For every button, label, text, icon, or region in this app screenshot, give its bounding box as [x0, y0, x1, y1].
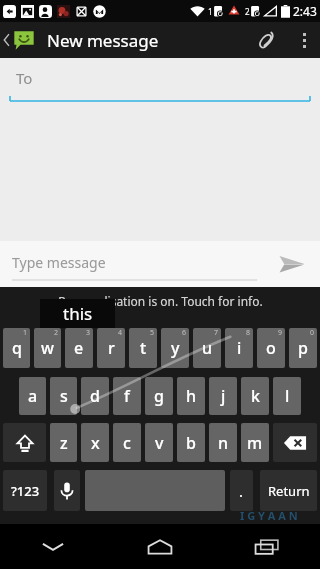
button[interactable]: z	[50, 423, 77, 462]
staticText: To	[16, 68, 33, 88]
staticText: n	[218, 432, 229, 454]
button[interactable]: t	[129, 328, 157, 368]
button[interactable]: Voice input	[54, 470, 80, 511]
staticText: f	[124, 385, 130, 407]
button[interactable]: f	[113, 377, 141, 415]
staticText: 1	[23, 328, 28, 338]
staticText: i	[237, 337, 242, 359]
staticText: b	[186, 432, 196, 454]
button[interactable]: c	[113, 423, 141, 462]
staticText: y	[171, 337, 180, 359]
button[interactable]: r	[97, 328, 125, 368]
button[interactable]: n	[209, 423, 237, 462]
staticText: m	[247, 432, 263, 454]
staticText: 6	[182, 328, 187, 338]
button[interactable]: Navigate up	[0, 22, 39, 58]
staticText: a	[28, 385, 38, 407]
staticText: o	[266, 337, 276, 359]
button[interactable]: Return	[260, 470, 317, 511]
button[interactable]: i	[225, 328, 253, 368]
button[interactable]: l	[273, 377, 301, 415]
staticText: 7	[214, 328, 219, 338]
staticText: q	[12, 337, 22, 359]
button[interactable]: o	[257, 328, 285, 368]
staticText: ?123	[11, 482, 40, 500]
staticText: w	[41, 337, 54, 359]
staticText: .	[239, 481, 244, 501]
button[interactable]: e	[65, 328, 93, 368]
button[interactable]: j	[209, 377, 237, 415]
button[interactable]: a	[19, 377, 46, 415]
button[interactable]: this	[40, 299, 115, 328]
staticText: l	[285, 385, 290, 407]
button[interactable]: Delete	[273, 423, 317, 462]
button[interactable]: m	[241, 423, 269, 462]
button[interactable]: y	[161, 328, 189, 368]
staticText: this	[63, 302, 93, 325]
button[interactable]: Shift	[3, 423, 46, 462]
staticText: r	[108, 337, 115, 359]
button[interactable]: Attach	[244, 22, 288, 58]
button[interactable]: More options	[288, 22, 320, 58]
staticText: 2	[54, 328, 59, 338]
button[interactable]: k	[241, 377, 269, 415]
staticText: 9	[278, 328, 283, 338]
staticText: p	[298, 337, 308, 359]
button[interactable]: Period	[230, 470, 253, 511]
staticText: 5	[150, 328, 155, 338]
button[interactable]: p	[289, 328, 317, 368]
staticText: New message	[47, 29, 159, 52]
button[interactable]: d	[81, 377, 109, 415]
button[interactable]: s	[50, 377, 77, 415]
staticText: 2:43	[293, 3, 317, 19]
staticText: z	[60, 432, 68, 454]
staticText: Type message	[12, 253, 106, 272]
button[interactable]: Home	[106, 524, 213, 569]
staticText: c	[123, 432, 131, 454]
staticText: I G Y A A N	[240, 508, 298, 523]
button[interactable]: Symbols	[3, 470, 47, 511]
button[interactable]: u	[193, 328, 221, 368]
staticText: 2	[245, 6, 250, 17]
button[interactable]: Type message	[12, 246, 257, 282]
staticText: 3	[86, 328, 91, 338]
staticText: d	[90, 385, 100, 407]
button[interactable]: b	[177, 423, 205, 462]
staticText: h	[186, 385, 197, 407]
button[interactable]: To	[0, 58, 320, 103]
staticText: 0	[310, 328, 315, 338]
button[interactable]: Send	[272, 244, 312, 284]
staticText: x	[91, 432, 100, 454]
staticText: g	[154, 385, 164, 407]
staticText: 4	[118, 328, 123, 338]
button[interactable]: q	[3, 328, 30, 368]
button[interactable]: x	[81, 423, 109, 462]
staticText: e	[74, 337, 84, 359]
staticText: s	[60, 385, 68, 407]
staticText: j	[221, 385, 226, 407]
staticText: 1	[208, 6, 213, 17]
button[interactable]: Recent apps	[213, 524, 320, 569]
button[interactable]: w	[34, 328, 61, 368]
staticText: Return	[268, 482, 310, 500]
button[interactable]: g	[145, 377, 173, 415]
button[interactable]: v	[145, 423, 173, 462]
button[interactable]: Hide keyboard	[0, 524, 106, 569]
staticText: v	[155, 432, 164, 454]
staticText: k	[251, 385, 260, 407]
staticText: u	[202, 337, 213, 359]
staticText: t	[140, 337, 147, 359]
button[interactable]: h	[177, 377, 205, 415]
staticText: 8	[246, 328, 251, 338]
button[interactable]: Personalisation is on. Touch for info.	[58, 293, 263, 309]
